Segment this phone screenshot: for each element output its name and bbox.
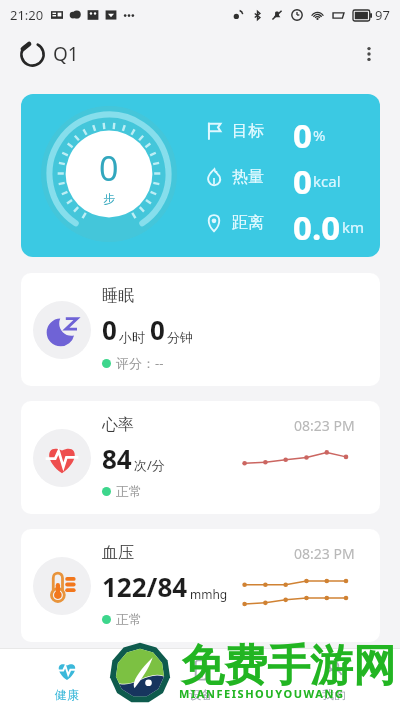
staticText: km: [342, 217, 365, 237]
staticText: 次/分: [134, 456, 165, 474]
staticText: 距离: [232, 213, 264, 233]
staticText: MIANFEISHOUYOUWANG: [179, 686, 345, 701]
staticText: 97: [375, 6, 390, 24]
button[interactable]: 健康: [0, 649, 134, 711]
staticText: 84: [102, 441, 132, 476]
button[interactable]: More options: [356, 41, 382, 67]
staticText: 0: [102, 312, 117, 347]
staticText: 122/84: [102, 569, 188, 604]
staticText: %: [313, 125, 326, 145]
staticText: 评分：--: [116, 354, 164, 372]
button[interactable]: 心率: [21, 401, 380, 514]
button[interactable]: 我的: [267, 649, 400, 711]
staticText: 步: [103, 191, 115, 206]
button[interactable]: 血压: [21, 529, 380, 642]
staticText: 0: [293, 159, 312, 195]
staticText: 0.0: [293, 205, 341, 241]
staticText: 08:23 PM: [294, 544, 355, 563]
staticText: 正常: [116, 611, 142, 627]
staticText: 我的: [322, 687, 346, 702]
staticText: 0: [99, 145, 119, 191]
staticText: 睡眠: [102, 286, 134, 306]
staticText: 08:23 PM: [294, 416, 355, 435]
staticText: kcal: [313, 171, 341, 191]
staticText: 免费手游网: [181, 639, 396, 693]
staticText: 热量: [232, 167, 264, 187]
button[interactable]: 0: [21, 94, 380, 257]
staticText: 目标: [232, 121, 264, 141]
staticText: Q1: [53, 41, 79, 67]
staticText: 分钟: [167, 329, 193, 345]
staticText: 0: [293, 113, 312, 149]
button[interactable]: 设备: [134, 649, 267, 711]
button[interactable]: 睡眠: [21, 273, 380, 386]
staticText: 心率: [102, 415, 134, 435]
staticText: 血压: [102, 543, 134, 563]
staticText: 0: [150, 312, 165, 347]
staticText: 健康: [55, 687, 79, 702]
staticText: 21:20: [10, 6, 44, 24]
staticText: mmhg: [190, 586, 228, 602]
staticText: 正常: [116, 483, 142, 499]
button[interactable]: Sync device: [18, 40, 46, 68]
staticText: 小时: [119, 329, 145, 345]
staticText: 设备: [189, 687, 213, 702]
